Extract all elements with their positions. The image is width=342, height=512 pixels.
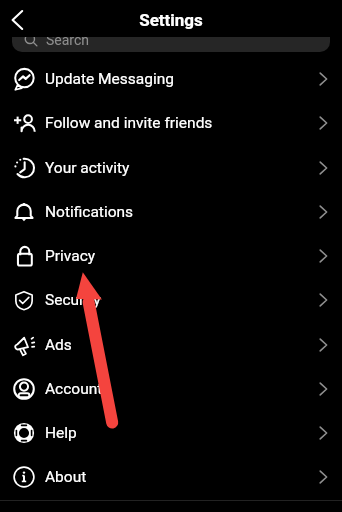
- staticText: Update Messaging: [45, 70, 174, 88]
- button[interactable]: About: [0, 455, 342, 499]
- button[interactable]: Account: [0, 367, 342, 411]
- button[interactable]: Ads: [0, 323, 342, 367]
- button[interactable]: Your activity: [0, 146, 342, 190]
- button[interactable]: Privacy: [0, 234, 342, 278]
- staticText: Follow and invite friends: [45, 114, 213, 132]
- button[interactable]: Notifications: [0, 190, 342, 234]
- staticText: Privacy: [45, 247, 96, 265]
- staticText: Settings: [139, 10, 203, 30]
- button[interactable]: Search: [12, 12, 330, 52]
- staticText: Help: [45, 424, 77, 442]
- staticText: Search: [46, 32, 90, 48]
- button[interactable]: Security: [0, 278, 342, 322]
- staticText: Account: [45, 380, 103, 398]
- button[interactable]: Help: [0, 411, 342, 455]
- staticText: Ads: [45, 336, 72, 354]
- button[interactable]: Follow and invite friends: [0, 101, 342, 145]
- button[interactable]: Back: [3, 6, 31, 34]
- staticText: Your activity: [45, 159, 130, 177]
- staticText: Notifications: [45, 203, 134, 221]
- staticText: About: [45, 468, 87, 486]
- staticText: Security: [45, 291, 101, 309]
- button[interactable]: Update Messaging: [0, 57, 342, 101]
